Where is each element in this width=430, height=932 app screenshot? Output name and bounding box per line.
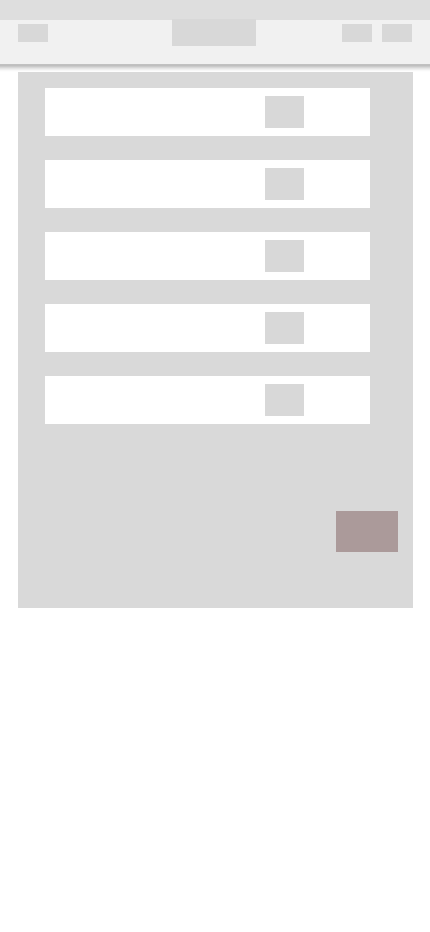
button[interactable]: List item 2 bbox=[45, 160, 370, 208]
button[interactable]: List item 4 bbox=[45, 304, 370, 352]
button[interactable]: List item 5 bbox=[45, 376, 370, 424]
button[interactable]: List item 1 bbox=[45, 88, 370, 136]
button[interactable]: List item 3 bbox=[45, 232, 370, 280]
